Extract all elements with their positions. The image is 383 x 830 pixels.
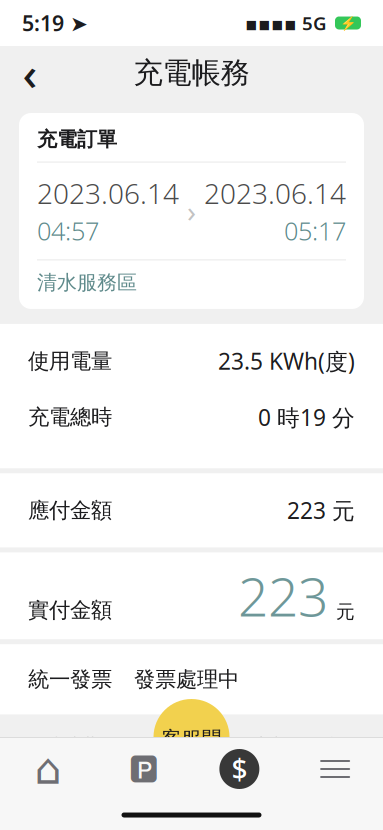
staticText: 🅿 [129, 753, 159, 785]
button[interactable]: Billing [191, 738, 287, 800]
staticText: 實付金額 [28, 597, 112, 623]
staticText: ⚡ [339, 15, 356, 31]
staticText: 客服問答 [161, 726, 221, 775]
staticText: 清水服務區 [37, 270, 137, 295]
staticText: 充電帳務 [133, 55, 249, 91]
staticText: 223 元 [287, 495, 355, 525]
staticText: 充電訂單 [37, 127, 117, 152]
staticText: › [187, 191, 196, 230]
staticText: 2023.06.14 [204, 175, 346, 212]
staticText: 2023.06.14 [37, 175, 179, 212]
button[interactable]: Menu [287, 738, 383, 800]
staticText: ‹ [22, 43, 37, 103]
staticText: 統一發票 [28, 666, 112, 692]
staticText: 223 [238, 560, 328, 631]
staticText: 元 [336, 600, 355, 623]
button[interactable]: Home [0, 738, 96, 800]
staticText: 發票處理中 [134, 666, 239, 692]
staticText: 04:57 [37, 214, 99, 247]
button[interactable]: Search stations [96, 738, 192, 800]
staticText: 應付金額 [28, 497, 112, 523]
staticText: ⌂ [34, 745, 61, 793]
staticText: ▪▪▪▪ 5G [245, 11, 327, 35]
button[interactable]: 客服問答 [153, 699, 229, 775]
staticText: 0 時19 分 [258, 402, 355, 432]
staticText: $ [231, 750, 247, 788]
staticText: 使用電量 [28, 348, 112, 374]
staticText: 05:17 [284, 214, 346, 247]
button[interactable]: Back [8, 51, 52, 95]
staticText: 23.5 KWh(度) [218, 346, 355, 376]
staticText: 充電總時 [28, 404, 112, 430]
staticText: 5:19 ➤ [22, 9, 88, 37]
staticText: 俥酷消費明細僅供參考；優惠相關折抵結果依合作夥伴交易明細為準。如有疑問，請參見各… [24, 734, 347, 826]
